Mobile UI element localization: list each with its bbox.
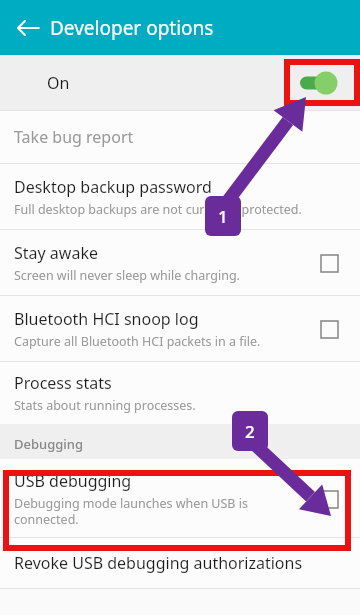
button[interactable]: Bluetooth HCI snoop log	[318, 318, 340, 340]
button[interactable]: USB debugging	[318, 488, 340, 510]
button[interactable]: Process stats	[0, 362, 360, 424]
button[interactable]: Bluetooth HCI snoop log	[0, 296, 360, 361]
button[interactable]: On	[0, 55, 360, 110]
button[interactable]: Stay awake	[0, 230, 360, 295]
staticText: Revoke USB debugging authorizations	[14, 552, 303, 574]
staticText: Debugging mode launches when USB is conn…	[14, 495, 248, 527]
button[interactable]: Back	[10, 10, 46, 46]
button[interactable]: Stay awake	[318, 252, 340, 274]
staticText: USB debugging	[14, 470, 132, 492]
button[interactable]: Desktop backup password	[0, 164, 360, 229]
staticText: Stay awake	[14, 242, 98, 264]
staticText: Desktop backup password	[14, 176, 212, 198]
button[interactable]: USB debugging	[0, 459, 360, 537]
staticText: On	[47, 72, 70, 94]
staticText: Process stats	[14, 372, 112, 394]
staticText: Developer options	[50, 15, 214, 41]
button[interactable]: Revoke USB debugging authorizations	[0, 538, 360, 588]
staticText: Take bug report	[14, 126, 134, 148]
staticText: Capture all Bluetooth HCI packets in a f…	[14, 333, 261, 350]
staticText: Bluetooth HCI snoop log	[14, 308, 199, 330]
staticText: Full desktop backups are not currently p…	[14, 201, 302, 218]
staticText: Stats about running processes.	[14, 397, 196, 414]
staticText: 2	[245, 420, 255, 443]
staticText: 1	[218, 205, 228, 228]
staticText: Debugging	[14, 435, 84, 453]
button[interactable]: Take bug report	[0, 111, 360, 163]
staticText: Screen will never sleep while charging.	[14, 267, 240, 284]
